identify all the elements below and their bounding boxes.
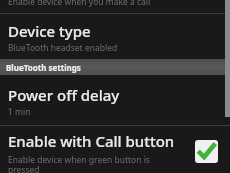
staticText: Enable device when you make a call <box>8 0 151 8</box>
button[interactable]: Enable device when you make a call <box>0 0 230 13</box>
staticText: Enable device when green button is press… <box>8 154 168 173</box>
staticText: 1 min <box>8 106 31 118</box>
button[interactable]: Enable with Call button <box>0 126 230 173</box>
other: Enable with Call button checkbox <box>195 140 218 163</box>
staticText: Power off delay <box>8 85 120 105</box>
button[interactable]: Power off delay <box>0 75 230 125</box>
staticText: Enable with Call button <box>8 131 175 151</box>
staticText: BlueTooth settings <box>6 62 81 73</box>
staticText: Device type <box>8 21 91 41</box>
staticText: BlueTooth headset enabled <box>8 42 118 54</box>
button[interactable]: Device type <box>0 14 230 59</box>
